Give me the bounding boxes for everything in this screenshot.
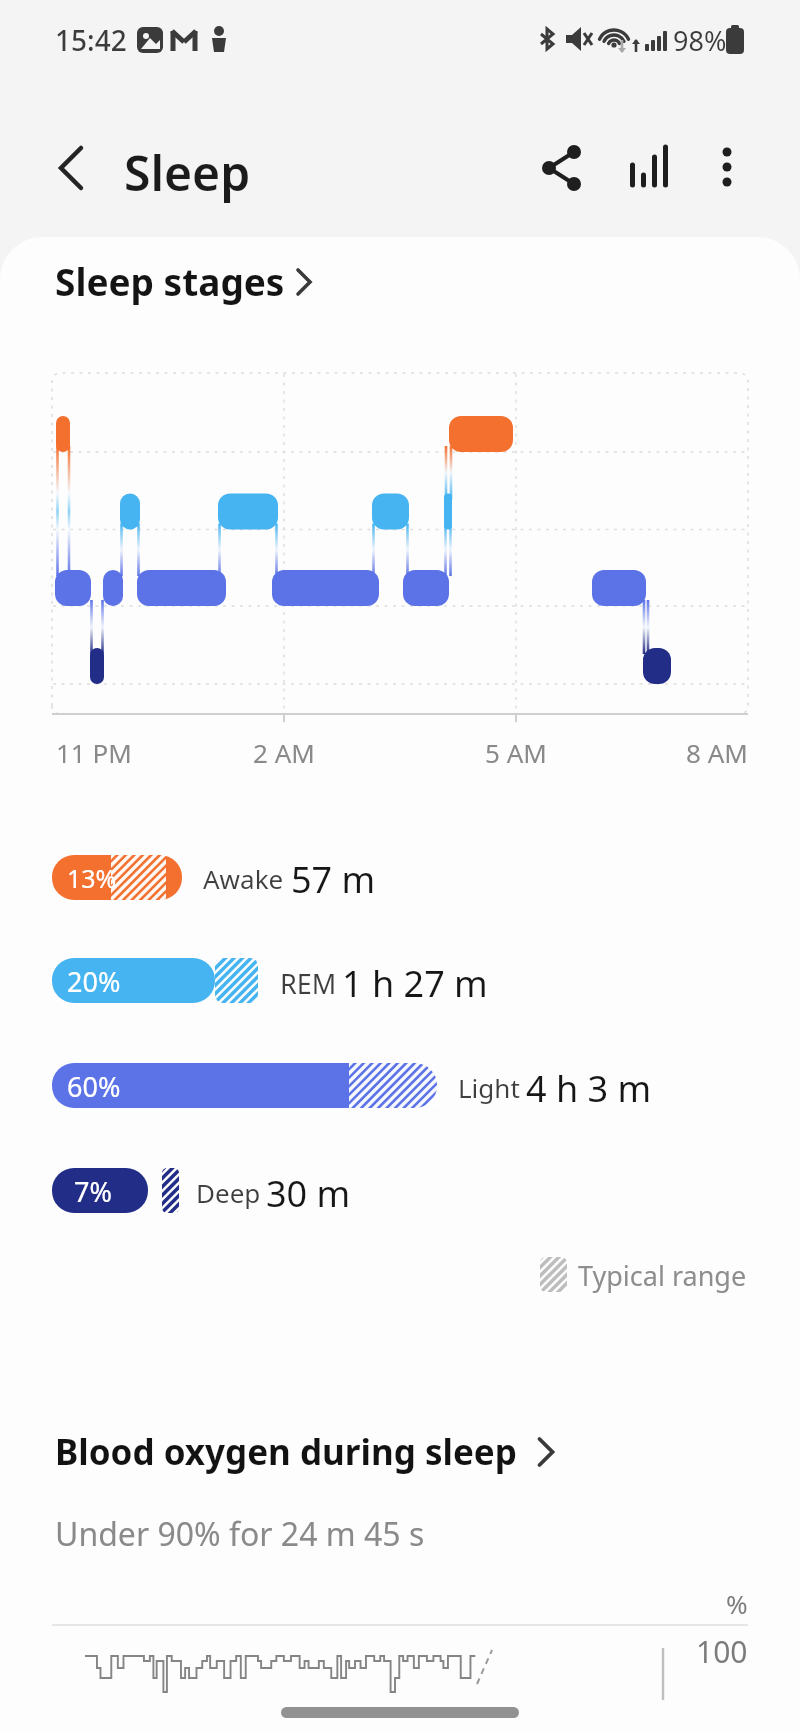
button[interactable]: [40, 138, 100, 198]
button[interactable]: [616, 136, 680, 200]
staticText: 1 h 27 m: [342, 959, 488, 1008]
button[interactable]: [702, 136, 754, 188]
staticText: Under 90% for 24 m 45 s: [55, 1512, 425, 1556]
staticText: 11 PM: [56, 735, 132, 770]
staticText: 60%: [67, 1068, 121, 1105]
staticText: Typical range: [578, 1257, 747, 1294]
button[interactable]: Blood oxygen during sleep: [40, 1420, 580, 1482]
staticText: 20%: [67, 963, 121, 1000]
staticText: 15:42: [55, 21, 127, 59]
staticText: 100: [696, 1631, 748, 1672]
staticText: %: [726, 1586, 748, 1621]
staticText: 2 AM: [253, 735, 315, 770]
staticText: 30 m: [266, 1169, 351, 1218]
staticText: Light: [458, 1070, 520, 1105]
staticText: Awake: [203, 861, 284, 896]
staticText: REM: [280, 965, 337, 1002]
staticText: Sleep stages: [55, 256, 285, 306]
staticText: 98%: [673, 22, 727, 59]
staticText: Deep: [196, 1175, 261, 1210]
staticText: Blood oxygen during sleep: [55, 1428, 517, 1476]
staticText: 57 m: [291, 855, 376, 904]
staticText: 7%: [74, 1173, 112, 1210]
staticText: 5 AM: [485, 735, 547, 770]
staticText: Sleep: [124, 140, 251, 205]
button[interactable]: Sleep stages: [40, 250, 340, 310]
staticText: 4 h 3 m: [526, 1064, 652, 1113]
staticText: 13%: [67, 861, 117, 895]
staticText: 8 AM: [686, 735, 748, 770]
button[interactable]: [528, 136, 592, 200]
